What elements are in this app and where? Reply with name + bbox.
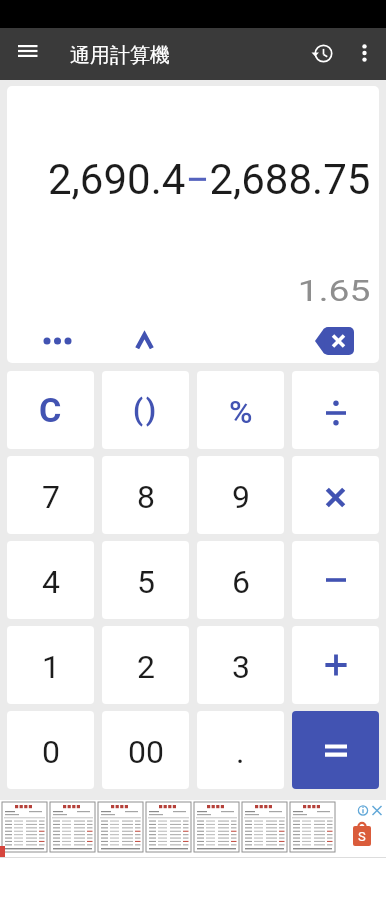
button[interactable]: 3 — [197, 626, 284, 704]
button[interactable]: 9 — [197, 456, 284, 534]
staticText: S — [358, 829, 366, 844]
button[interactable]: 7 — [7, 456, 94, 534]
button[interactable]: % — [197, 371, 284, 449]
staticText: 4 — [42, 563, 60, 601]
button[interactable] — [292, 456, 379, 534]
staticText: 2 — [137, 648, 155, 686]
button[interactable] — [303, 320, 365, 362]
staticText: () — [133, 393, 159, 427]
staticText: 7 — [42, 478, 60, 516]
staticText: . — [236, 733, 245, 771]
staticText: 1.65 — [298, 273, 371, 308]
button[interactable]: 8 — [102, 456, 189, 534]
button[interactable]: 00 — [102, 711, 189, 789]
button[interactable]: 5 — [102, 541, 189, 619]
button[interactable] — [292, 711, 379, 789]
staticText: 通用計算機 — [70, 43, 170, 68]
button[interactable]: 0 — [7, 711, 94, 789]
button[interactable]: 4 — [7, 541, 94, 619]
button[interactable] — [8, 31, 48, 71]
staticText: 3 — [232, 648, 250, 686]
staticText: 5 — [137, 563, 155, 601]
button[interactable]: 2 — [102, 626, 189, 704]
button[interactable]: 6 — [197, 541, 284, 619]
staticText: 00 — [128, 733, 164, 771]
staticText: % — [229, 393, 253, 431]
staticText: 6 — [232, 563, 250, 601]
staticText: 8 — [137, 478, 155, 516]
button[interactable] — [292, 541, 379, 619]
staticText: 1 — [42, 648, 60, 686]
button[interactable]: () — [102, 371, 189, 449]
button[interactable] — [292, 371, 379, 449]
staticText: 2,690.4−2,688.75 — [48, 155, 371, 204]
button[interactable]: S — [0, 800, 386, 858]
staticText: 0 — [42, 733, 60, 771]
button[interactable] — [124, 324, 164, 358]
button[interactable]: . — [197, 711, 284, 789]
staticText: 9 — [232, 478, 250, 516]
button[interactable] — [347, 32, 381, 74]
button[interactable] — [29, 324, 85, 358]
button[interactable] — [301, 32, 343, 74]
staticText: C — [39, 390, 62, 430]
button[interactable] — [292, 626, 379, 704]
button[interactable]: C — [7, 371, 94, 449]
button[interactable]: 1 — [7, 626, 94, 704]
